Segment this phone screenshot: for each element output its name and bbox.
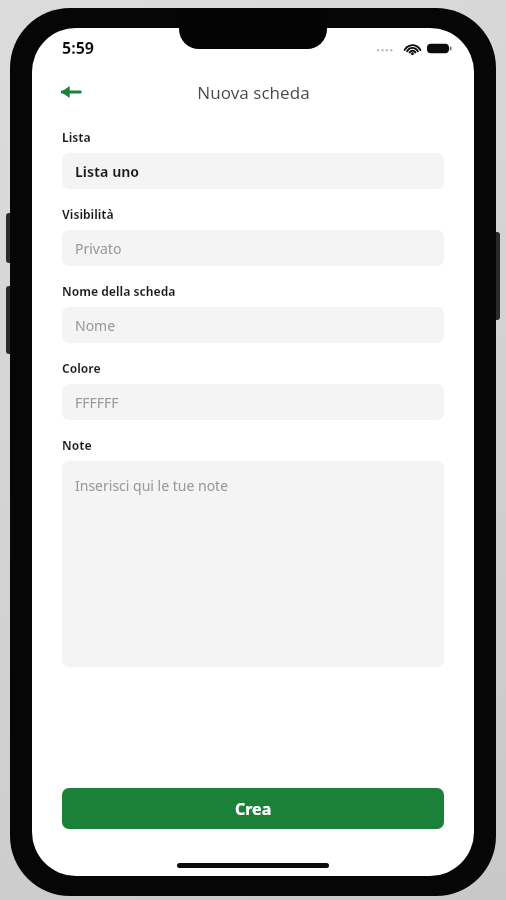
button[interactable]: Back [52, 73, 90, 111]
button[interactable]: Nome [62, 307, 444, 343]
staticText: Nome della scheda [62, 283, 176, 299]
staticText: Visibilità [62, 206, 114, 222]
staticText: Note [62, 437, 92, 453]
staticText: 5:59 [62, 37, 94, 59]
staticText: Crea [235, 798, 272, 820]
button[interactable]: Crea [62, 788, 444, 829]
staticText: Nuova scheda [197, 81, 310, 104]
button[interactable]: Inserisci qui le tue note [62, 461, 444, 667]
button[interactable]: Lista uno [62, 153, 444, 189]
staticText: Privato [75, 239, 122, 258]
staticText: Colore [62, 360, 101, 376]
button[interactable]: FFFFFF [62, 384, 444, 420]
staticText: Nome [75, 316, 116, 335]
staticText: FFFFFF [75, 393, 119, 412]
staticText: Lista [62, 129, 91, 145]
staticText: Lista uno [75, 162, 140, 181]
button[interactable]: Privato [62, 230, 444, 266]
staticText: Inserisci qui le tue note [75, 476, 229, 495]
